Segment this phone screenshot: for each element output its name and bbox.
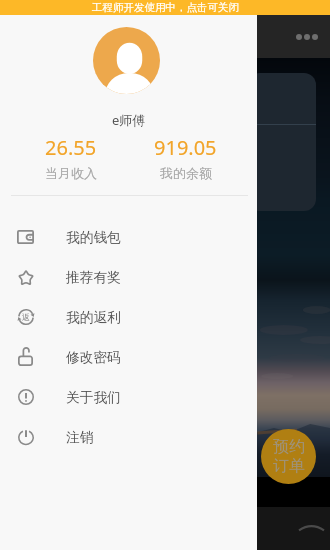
staticText: 我的钱包 xyxy=(66,229,121,246)
staticText: e师傅 xyxy=(112,111,146,129)
button[interactable]: 关于我们 xyxy=(0,377,257,417)
staticText: 注销 xyxy=(66,429,94,446)
staticText: 修改密码 xyxy=(66,349,121,366)
button[interactable]: 返 xyxy=(0,297,257,337)
staticText: 返 xyxy=(22,312,30,322)
button[interactable]: 我的钱包 xyxy=(0,217,257,257)
button[interactable]: More options xyxy=(296,34,318,40)
button[interactable]: 修改密码 xyxy=(0,337,257,377)
staticText: 推荐有奖 xyxy=(66,269,121,286)
staticText: 关于我们 xyxy=(66,389,121,406)
staticText: 919.05 xyxy=(154,134,217,161)
staticText: 我的余额 xyxy=(160,165,212,181)
button[interactable]: 注销 xyxy=(0,417,257,457)
button[interactable]: 推荐有奖 xyxy=(0,257,257,297)
staticText: 工程师开发使用中，点击可关闭 xyxy=(92,1,239,14)
staticText: 26.55 xyxy=(45,134,97,161)
staticText: 我的返利 xyxy=(66,309,121,326)
staticText: 预约 订单 xyxy=(273,437,305,476)
staticText: 当月收入 xyxy=(45,165,97,181)
button[interactable]: 预约 订单 xyxy=(261,429,316,484)
button[interactable]: 工程师开发使用中，点击可关闭 xyxy=(0,0,330,15)
